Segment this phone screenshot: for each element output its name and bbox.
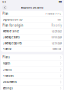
staticText: ▮▮▮ bbox=[59, 0, 62, 3]
staticText: Coverage Starts bbox=[3, 35, 20, 39]
staticText: Premier PPO bbox=[45, 12, 61, 15]
button[interactable]: Settings bbox=[1, 85, 63, 90]
staticText: 9:41 bbox=[2, 0, 6, 3]
staticText: Rx only bbox=[51, 24, 61, 27]
staticText: Member since bbox=[3, 30, 19, 33]
button[interactable]: Credits bbox=[1, 67, 63, 73]
staticText: Plan(s) bbox=[3, 47, 12, 51]
staticText: Plan bbox=[3, 12, 9, 15]
staticText: Depends on ID bbox=[3, 18, 23, 21]
button[interactable]: Back bbox=[2, 5, 7, 10]
staticText: 12/29/2023 bbox=[51, 30, 61, 33]
staticText: Settings bbox=[3, 86, 13, 90]
button[interactable]: Plans bbox=[1, 54, 63, 60]
button[interactable]: Health bbox=[1, 60, 63, 66]
staticText: Plan for origin bbox=[3, 24, 24, 27]
staticText: Medical bbox=[52, 47, 61, 51]
staticText: 01/01/2024 bbox=[51, 35, 61, 39]
staticText: 0001 bbox=[57, 18, 61, 21]
staticText: Account Details bbox=[21, 6, 43, 9]
staticText: Coverage Expires bbox=[3, 41, 22, 45]
staticText: Plans bbox=[3, 56, 10, 59]
staticText: Documents bbox=[3, 80, 17, 84]
staticText: Credits bbox=[3, 68, 12, 71]
button[interactable]: Providers bbox=[1, 73, 63, 79]
staticText: Health bbox=[3, 62, 11, 65]
button[interactable]: Documents bbox=[1, 79, 63, 85]
staticText: Providers bbox=[3, 74, 14, 78]
staticText: 12/31/2024 bbox=[51, 41, 61, 45]
